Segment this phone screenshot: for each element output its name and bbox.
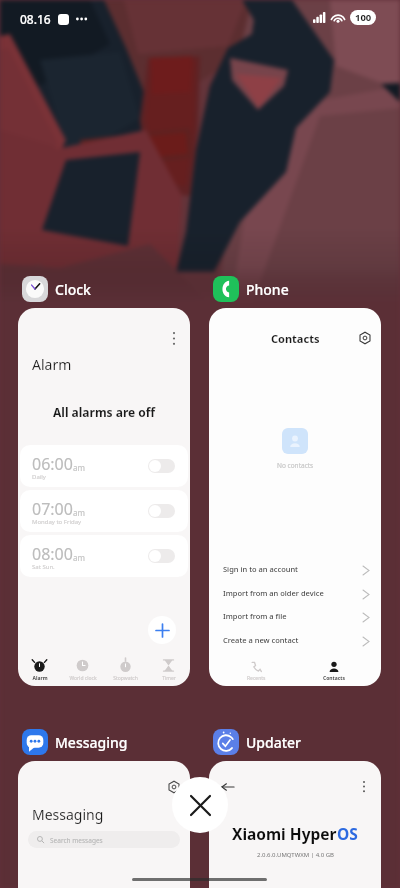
staticText: Clock [55, 280, 91, 299]
button[interactable]: Contacts [209, 308, 381, 686]
button[interactable]: Timer [147, 659, 190, 682]
button[interactable]: Import from an older device [209, 582, 381, 605]
button[interactable]: Contacts [304, 661, 364, 682]
button[interactable]: Settings [166, 779, 182, 795]
staticText: Phone [246, 280, 289, 299]
button[interactable] [148, 459, 175, 473]
staticText: Alarm [32, 355, 72, 374]
staticText: Import from a file [223, 611, 287, 621]
staticText: World clock [69, 675, 97, 682]
staticText: Search messages [50, 836, 103, 845]
staticText: OS [337, 823, 358, 844]
button[interactable]: Import from a file [209, 605, 381, 628]
staticText: Messaging [32, 805, 104, 824]
staticText: Daily [32, 473, 46, 481]
staticText: Sat Sun. [32, 563, 55, 571]
button[interactable]: Stopwatch [104, 659, 147, 682]
staticText: No contacts [277, 461, 314, 470]
staticText: Contacts [271, 331, 320, 346]
button[interactable]: Add alarm [148, 616, 176, 644]
staticText: Messaging [55, 733, 128, 752]
button[interactable]: Back [220, 779, 236, 795]
button[interactable]: Settings [357, 330, 373, 346]
staticText: Updater [246, 733, 302, 752]
staticText: Recents [247, 675, 266, 682]
button[interactable]: Messaging [22, 729, 128, 755]
button[interactable]: Updater [213, 729, 302, 755]
button[interactable]: Close all [172, 777, 228, 833]
button[interactable] [148, 549, 175, 563]
staticText: Create a new contact [223, 635, 299, 645]
staticText: Stopwatch [113, 675, 138, 682]
button[interactable]: 07:00 [20, 490, 188, 532]
button[interactable]: Create a new contact [209, 629, 381, 652]
staticText: 08.16 [20, 11, 51, 27]
button[interactable]: 08:00 [20, 535, 188, 577]
staticText: 06:00 [32, 453, 73, 475]
button[interactable]: Clock [22, 276, 91, 302]
staticText: Contacts [323, 675, 346, 682]
staticText: am [73, 462, 85, 473]
staticText: Alarm [32, 675, 48, 682]
staticText: Timer [162, 675, 176, 682]
staticText: Xiaomi Hyper [232, 823, 337, 844]
button[interactable]: Phone [213, 276, 289, 302]
staticText: 100 [355, 11, 372, 24]
button[interactable]: Alarm [18, 308, 190, 686]
button[interactable]: Search messages [28, 831, 180, 848]
staticText: am [73, 552, 85, 563]
button[interactable]: Back [209, 761, 381, 888]
staticText: 07:00 [32, 498, 73, 520]
staticText: 2.0.6.0.UMQTWXM | 4.0 GB [257, 851, 334, 859]
button[interactable]: Recents [226, 661, 286, 682]
staticText: 08:00 [32, 543, 73, 565]
button[interactable]: World clock [61, 659, 104, 682]
button[interactable] [148, 504, 175, 518]
staticText: am [73, 507, 85, 518]
button[interactable]: Alarm [18, 659, 61, 682]
button[interactable]: Sign in to an account [209, 558, 381, 581]
staticText: Import from an older device [223, 588, 324, 598]
staticText: All alarms are off [53, 404, 156, 420]
button[interactable]: Settings [18, 761, 190, 888]
staticText: Monday to Friday [32, 518, 82, 526]
button[interactable]: 06:00 [20, 445, 188, 487]
staticText: Sign in to an account [223, 564, 298, 574]
